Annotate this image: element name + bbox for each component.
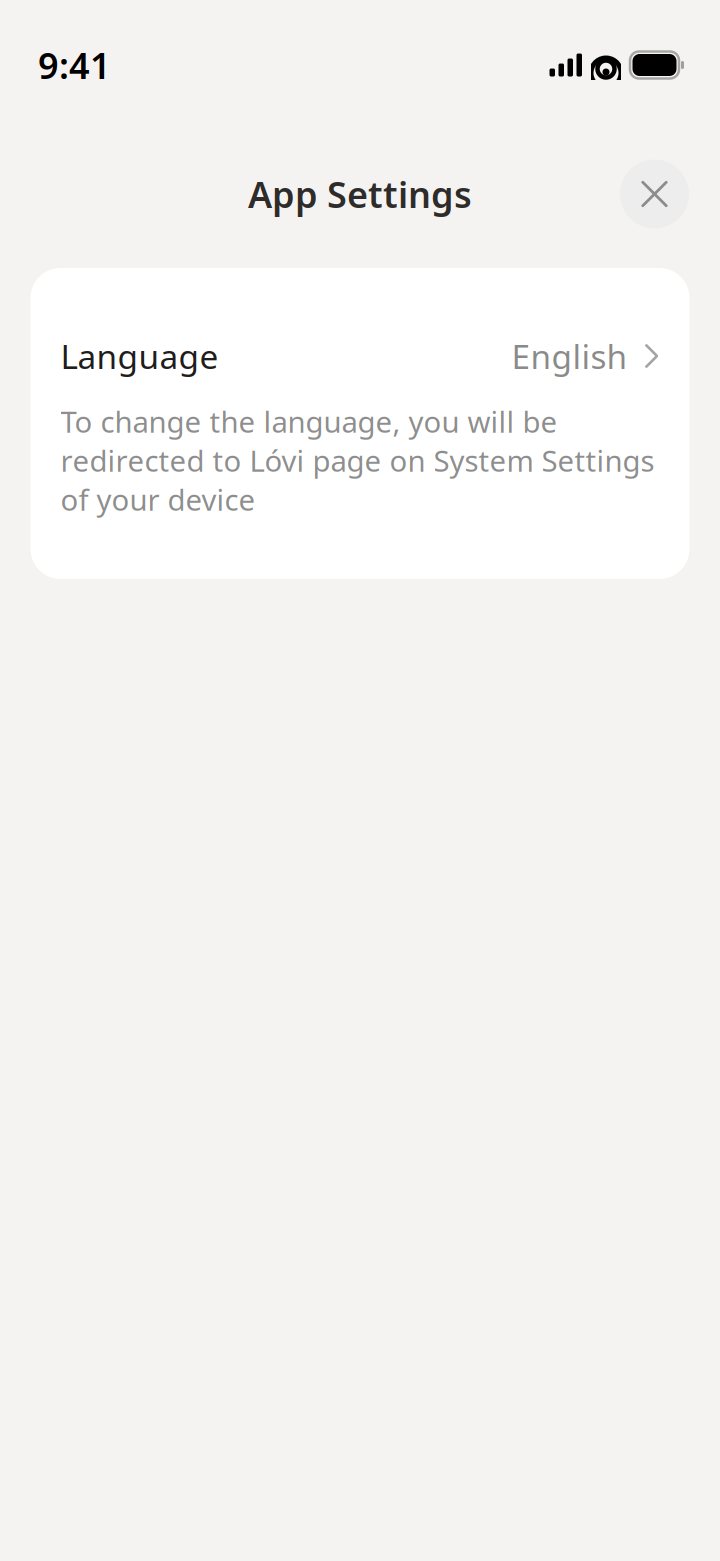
button[interactable]: Close xyxy=(620,159,689,228)
staticText: To change the language, you will be redi… xyxy=(60,402,654,519)
staticText: English xyxy=(511,334,627,378)
staticText: App Settings xyxy=(248,170,472,218)
staticText: 9:41 xyxy=(38,41,111,89)
staticText: Language xyxy=(60,334,218,378)
button[interactable]: Language xyxy=(30,268,689,378)
